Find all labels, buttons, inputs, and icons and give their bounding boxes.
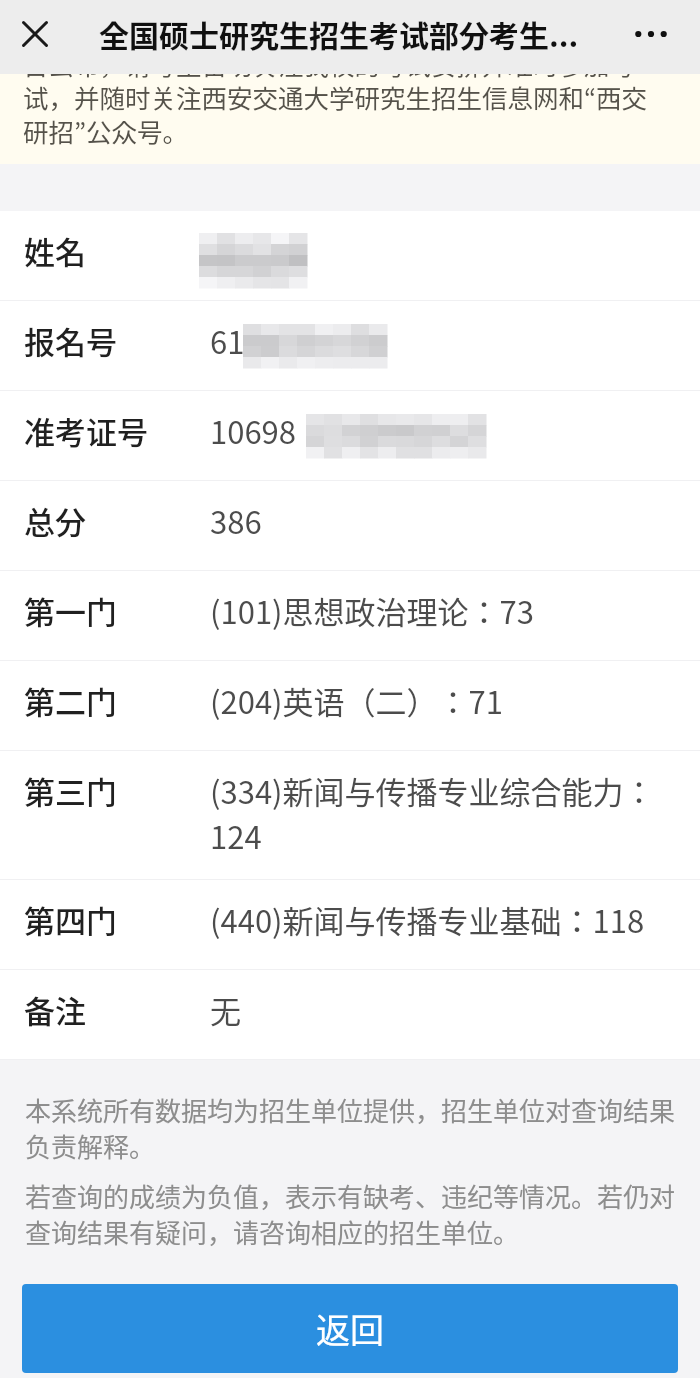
button[interactable]: 备注 bbox=[0, 970, 700, 1060]
button[interactable]: Close bbox=[11, 10, 59, 58]
staticText: 返回 bbox=[316, 1304, 384, 1353]
staticText: 386 bbox=[210, 498, 672, 543]
button[interactable]: 报名号 bbox=[0, 301, 700, 391]
button[interactable]: 准考证号 bbox=[0, 391, 700, 481]
staticText: (440)新闻与传播专业基础：118 bbox=[210, 897, 672, 942]
staticText: 姓名 bbox=[24, 228, 86, 273]
button[interactable]: 总分 bbox=[0, 481, 700, 571]
button[interactable]: More options bbox=[625, 8, 677, 60]
button[interactable]: 姓名 bbox=[0, 211, 700, 301]
staticText: 全国硕士研究生招生考试部分考生... bbox=[99, 12, 591, 55]
button[interactable]: 第三门 bbox=[0, 751, 700, 880]
staticText: 若查询的成绩为负值，表示有缺考、违纪等情况。若仍对 查询结果有疑问，请咨询相应的… bbox=[25, 1177, 676, 1250]
staticText: (204)英语（二）：71 bbox=[210, 678, 672, 723]
staticText: (101)思想政治理论：73 bbox=[210, 588, 672, 633]
staticText: 第四门 bbox=[24, 897, 117, 942]
staticText: 第一门 bbox=[24, 588, 117, 633]
staticText: 备注 bbox=[24, 987, 86, 1032]
button[interactable]: 第一门 bbox=[0, 571, 700, 661]
button[interactable]: 返回 bbox=[22, 1284, 678, 1373]
button[interactable]: 第二门 bbox=[0, 661, 700, 751]
staticText: 本系统所有数据均为招生单位提供，招生单位对查询结果 负责解释。 bbox=[25, 1091, 676, 1164]
staticText: 10698 bbox=[210, 408, 672, 453]
staticText: 第三门 bbox=[24, 768, 117, 813]
staticText: 无 bbox=[210, 987, 672, 1032]
staticText: 第二门 bbox=[24, 678, 117, 723]
staticText: (334)新闻与传播专业综合能力：124 bbox=[210, 768, 672, 858]
staticText: 报名号 bbox=[24, 318, 117, 363]
staticText: 总分 bbox=[24, 498, 86, 543]
staticText: 61 bbox=[210, 318, 672, 363]
staticText: 日公布，请考生密切关注我校的考试安排并准时参加考 试，并随时关注西安交通大学研究… bbox=[23, 74, 648, 150]
button[interactable]: 第四门 bbox=[0, 880, 700, 970]
staticText: 准考证号 bbox=[24, 408, 148, 453]
